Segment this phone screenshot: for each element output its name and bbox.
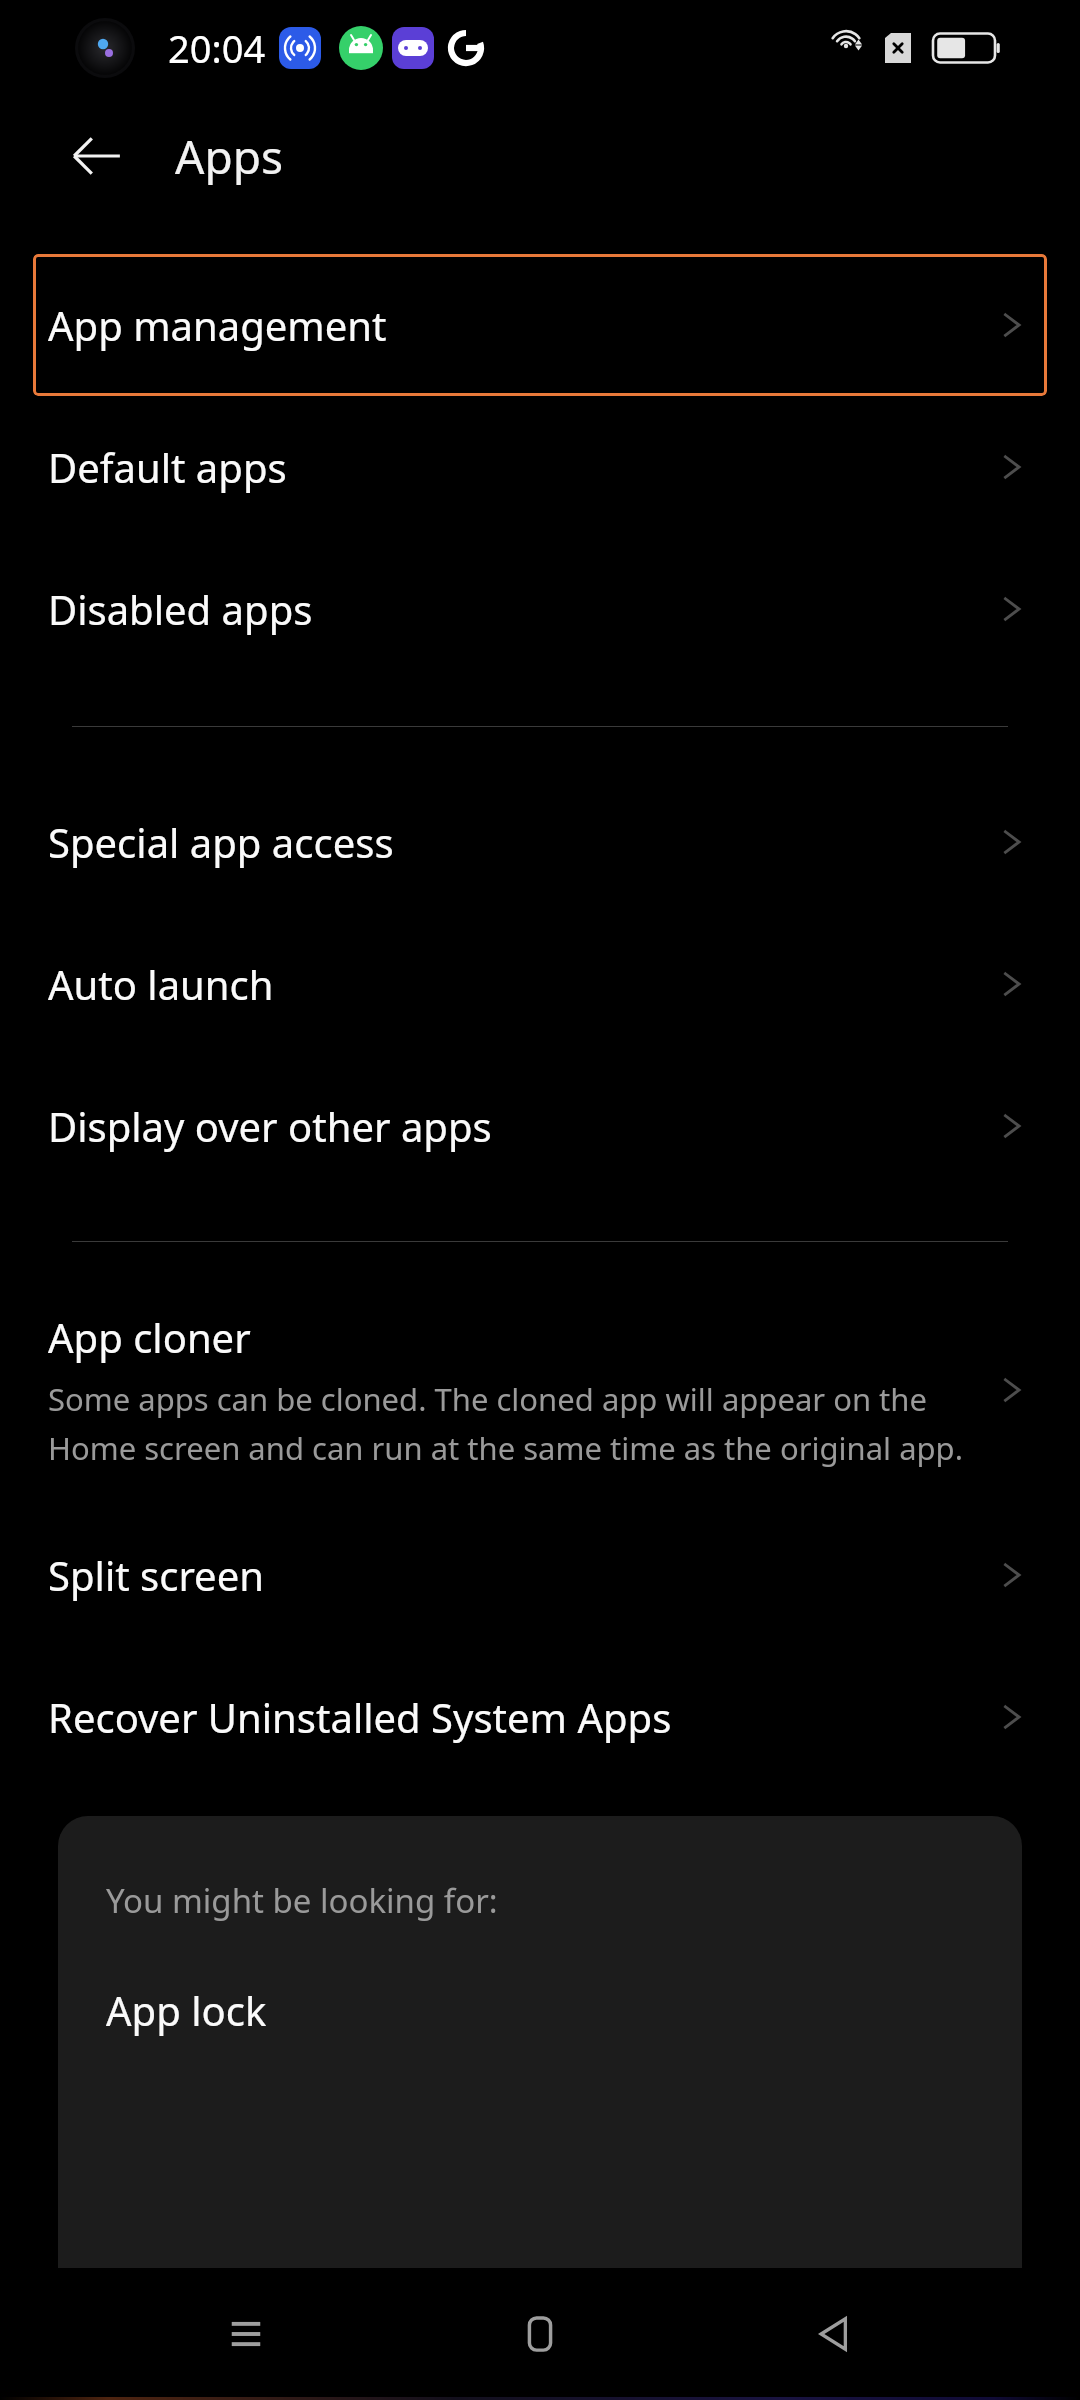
- staticText: App lock: [106, 1983, 267, 2037]
- button[interactable]: Recent apps: [198, 2286, 294, 2382]
- button[interactable]: You might be looking for:: [58, 1816, 1022, 2268]
- button[interactable]: App management: [33, 254, 1047, 396]
- button[interactable]: Disabled apps: [0, 538, 1080, 680]
- staticText: App management: [48, 298, 387, 352]
- button[interactable]: Back: [786, 2286, 882, 2382]
- staticText: Special app access: [48, 815, 394, 869]
- staticText: App cloner: [48, 1310, 251, 1364]
- staticText: Some apps can be cloned. The cloned app …: [48, 1378, 986, 1470]
- staticText: Apps: [175, 125, 284, 188]
- button[interactable]: App cloner: [0, 1276, 1080, 1504]
- staticText: Display over other apps: [48, 1099, 492, 1153]
- staticText: Split screen: [48, 1548, 264, 1602]
- button[interactable]: Split screen: [0, 1504, 1080, 1646]
- button[interactable]: Default apps: [0, 396, 1080, 538]
- button[interactable]: Display over other apps: [0, 1055, 1080, 1197]
- button[interactable]: Recover Uninstalled System Apps: [0, 1646, 1080, 1788]
- staticText: Default apps: [48, 440, 287, 494]
- button[interactable]: Back: [49, 108, 145, 204]
- staticText: 20:04: [168, 22, 266, 74]
- button[interactable]: Special app access: [0, 771, 1080, 913]
- button[interactable]: Auto launch: [0, 913, 1080, 1055]
- button[interactable]: Home: [492, 2286, 588, 2382]
- staticText: Disabled apps: [48, 582, 313, 636]
- staticText: Auto launch: [48, 957, 274, 1011]
- staticText: You might be looking for:: [106, 1878, 498, 1923]
- staticText: Recover Uninstalled System Apps: [48, 1690, 672, 1744]
